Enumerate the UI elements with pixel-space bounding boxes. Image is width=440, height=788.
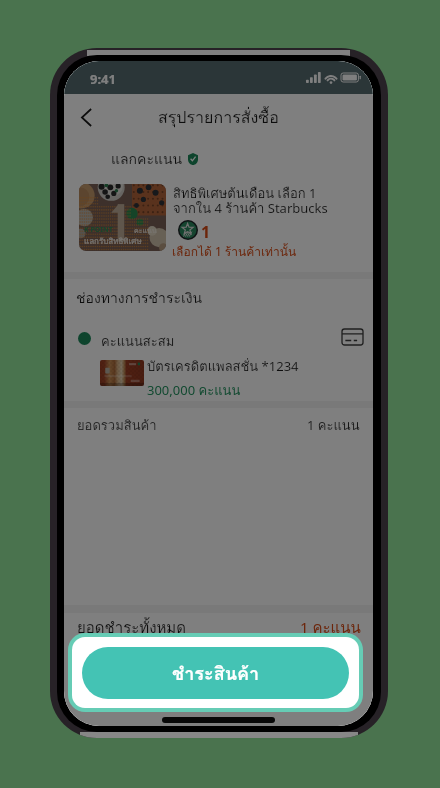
staticText: เลือกได้ 1 ร้านค้าเท่านั้น bbox=[172, 242, 297, 261]
staticText: จากใน 4 ร้านค้า Starbucks bbox=[173, 198, 328, 219]
staticText: 1 คะแนน bbox=[300, 616, 361, 636]
button[interactable]: ชำระสินค้า bbox=[82, 647, 349, 699]
staticText: ยอดชำระทั้งหมด bbox=[77, 616, 186, 640]
button[interactable]: Change payment card bbox=[338, 324, 366, 350]
staticText: 300,000 คะแนน bbox=[147, 380, 241, 401]
staticText: สรุปรายการสั่งซื้อ bbox=[158, 105, 279, 130]
staticText: 9:41 bbox=[90, 70, 116, 88]
button[interactable]: Back bbox=[68, 99, 104, 135]
staticText: คะแนน bbox=[134, 225, 157, 236]
staticText: สิทธิพิเศษต้นเดือน เลือก 1 bbox=[173, 183, 317, 204]
staticText: 1 คะแนน bbox=[307, 415, 360, 433]
staticText: K POINT bbox=[84, 225, 113, 235]
staticText: แลกคะแนน bbox=[111, 148, 183, 170]
staticText: แลกรับสิทธิพิเศษ bbox=[84, 235, 142, 248]
staticText: บัตรเครดิตแพลสชั่น *1234 bbox=[147, 356, 299, 377]
staticText: คะแนนสะสม bbox=[101, 331, 175, 352]
staticText: ชำระสินค้า bbox=[172, 659, 260, 688]
staticText: ช่องทางการชำระเงิน bbox=[76, 287, 203, 309]
staticText: ยอดรวมสินค้า bbox=[77, 415, 157, 436]
staticText: 1 bbox=[201, 221, 211, 243]
